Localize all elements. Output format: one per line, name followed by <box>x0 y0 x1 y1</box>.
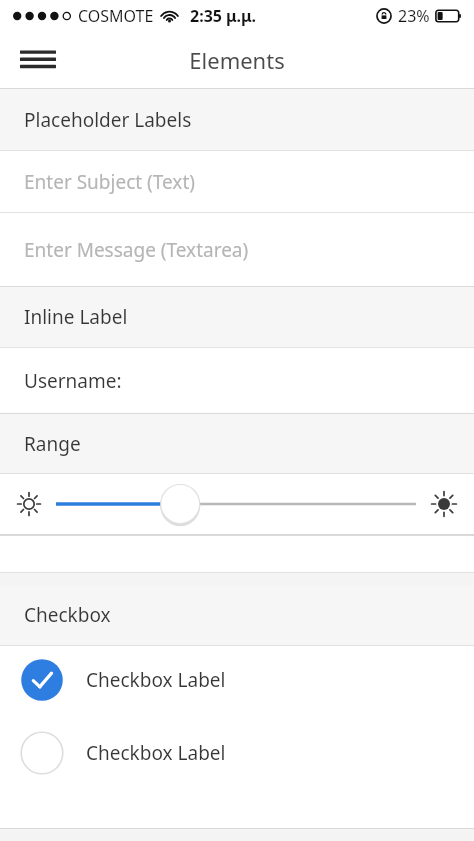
button[interactable]: Checkbox Label <box>0 646 474 714</box>
staticText: Username: <box>24 368 122 394</box>
staticText: Enter Subject (Text) <box>24 169 195 195</box>
button[interactable]: Enter Subject (Text) <box>0 151 474 212</box>
button[interactable]: Username: <box>0 348 474 413</box>
staticText: Inline Label <box>24 304 128 330</box>
staticText: Enter Message (Textarea) <box>24 237 249 263</box>
staticText: Elements <box>189 45 285 75</box>
staticText: 2:35 μ.μ. <box>190 5 256 27</box>
staticText: Checkbox Label <box>86 740 226 766</box>
staticText: Checkbox Label <box>86 667 226 693</box>
staticText: Placeholder Labels <box>24 107 192 133</box>
button[interactable]: Enter Message (Textarea) <box>0 213 474 286</box>
staticText: 23% <box>398 5 430 27</box>
staticText: COSMOTE <box>78 5 154 27</box>
staticText: Checkbox <box>24 602 111 628</box>
staticText: Range <box>24 431 81 457</box>
button[interactable]: Checkbox Label <box>0 714 474 792</box>
button[interactable]: Brightness slider <box>56 484 416 524</box>
button[interactable]: Open navigation menu <box>10 32 66 88</box>
